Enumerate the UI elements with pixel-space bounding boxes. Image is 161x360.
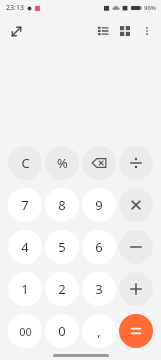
button[interactable]: More options	[137, 21, 157, 41]
staticText: 1	[21, 280, 29, 298]
button[interactable]: 3	[82, 272, 116, 306]
button[interactable]: 0	[45, 314, 79, 348]
button[interactable]: 00	[8, 314, 42, 348]
staticText: ,	[97, 322, 101, 340]
staticText: 3	[95, 280, 103, 298]
staticText: 5	[58, 238, 66, 256]
button[interactable]: History	[93, 21, 113, 41]
staticText: C	[21, 154, 30, 172]
button[interactable]: Clear	[8, 146, 42, 180]
staticText: 4	[21, 238, 29, 256]
staticText: 8	[58, 196, 66, 214]
button[interactable]: 9	[82, 188, 116, 222]
button[interactable]: Plus	[119, 272, 153, 306]
staticText: 7	[21, 196, 29, 214]
button[interactable]: 8	[45, 188, 79, 222]
staticText: 96%	[144, 4, 156, 12]
button[interactable]: 4	[8, 230, 42, 264]
button[interactable]: Converter	[115, 21, 135, 41]
button[interactable]: Expand	[5, 20, 27, 42]
staticText: 2	[58, 280, 66, 298]
button[interactable]: Minus	[119, 230, 153, 264]
staticText: 00	[19, 324, 32, 339]
staticText: 23:13	[6, 3, 24, 13]
button[interactable]: Multiply	[119, 188, 153, 222]
staticText: 9	[95, 196, 103, 214]
button[interactable]: %	[45, 146, 79, 180]
staticText: 0	[58, 322, 66, 340]
button[interactable]: 2	[45, 272, 79, 306]
button[interactable]: 1	[8, 272, 42, 306]
button[interactable]: Divide	[119, 146, 153, 180]
button[interactable]: Backspace	[82, 146, 116, 180]
staticText: %	[57, 154, 68, 172]
button[interactable]: ,	[82, 314, 116, 348]
button[interactable]: 7	[8, 188, 42, 222]
button[interactable]: 6	[82, 230, 116, 264]
button[interactable]: 5	[45, 230, 79, 264]
button[interactable]: Equals	[119, 314, 153, 348]
staticText: 6	[95, 238, 103, 256]
